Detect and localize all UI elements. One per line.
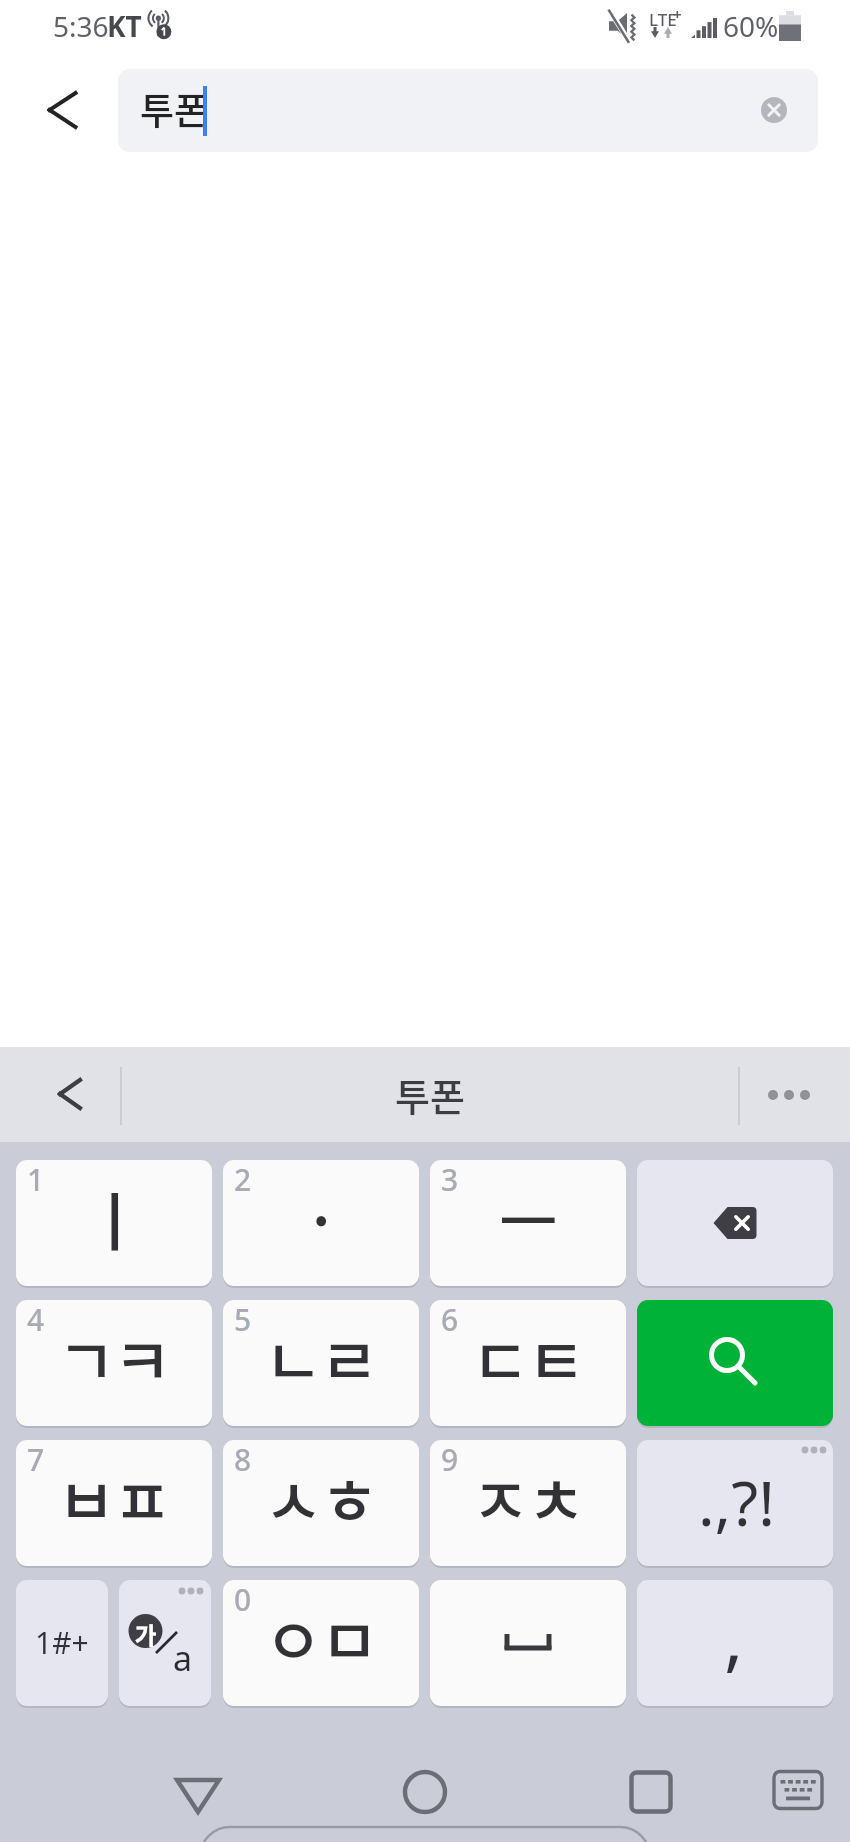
staticText: , bbox=[724, 1587, 744, 1685]
button[interactable]: Recent apps bbox=[613, 1754, 689, 1830]
staticText: LTE bbox=[649, 8, 677, 31]
staticText: 3 bbox=[441, 1160, 459, 1200]
staticText: · bbox=[303, 1171, 337, 1264]
button[interactable]: Search bbox=[637, 1300, 833, 1426]
staticText: .,?! bbox=[698, 1460, 775, 1544]
staticText: ㅅㅎ bbox=[264, 1451, 376, 1544]
button[interactable]: Switch language bbox=[119, 1580, 211, 1706]
staticText: ㄱㅋ bbox=[57, 1311, 169, 1404]
button[interactable]: Home bbox=[387, 1754, 463, 1830]
staticText: 6 bbox=[441, 1300, 459, 1340]
staticText: 1 bbox=[27, 1160, 45, 1200]
button[interactable]: Previous bbox=[36, 1066, 100, 1122]
button[interactable]: 6 bbox=[430, 1300, 626, 1426]
staticText: 투폰 bbox=[395, 1067, 465, 1122]
staticText: 8 bbox=[234, 1440, 252, 1480]
button[interactable]: 1#+ bbox=[16, 1580, 108, 1706]
button[interactable]: More options bbox=[755, 1067, 817, 1123]
button[interactable]: 3 bbox=[430, 1160, 626, 1286]
staticText: ㅣ bbox=[85, 1171, 141, 1264]
button[interactable]: Back bbox=[160, 1754, 236, 1830]
staticText: ㄷㅌ bbox=[471, 1311, 583, 1404]
staticText: KT bbox=[107, 7, 142, 45]
staticText: 0 bbox=[234, 1580, 252, 1620]
staticText: 9 bbox=[441, 1440, 459, 1480]
button[interactable]: Back bbox=[24, 76, 92, 144]
staticText: 4 bbox=[27, 1300, 45, 1340]
button[interactable]: .,?! bbox=[637, 1440, 833, 1566]
button[interactable]: Hide keyboard bbox=[762, 1758, 834, 1822]
staticText: 1#+ bbox=[35, 1622, 89, 1663]
button[interactable]: 0 bbox=[223, 1580, 419, 1706]
staticText: 가 bbox=[135, 1617, 157, 1650]
button[interactable]: , bbox=[637, 1580, 833, 1706]
button[interactable]: 2 bbox=[223, 1160, 419, 1286]
button[interactable]: 1 bbox=[16, 1160, 212, 1286]
button[interactable]: Clear text bbox=[752, 88, 796, 132]
staticText: 2 bbox=[234, 1160, 252, 1200]
button[interactable]: 5 bbox=[223, 1300, 419, 1426]
staticText: ㄴㄹ bbox=[264, 1311, 376, 1404]
staticText: ㅇㅁ bbox=[264, 1591, 376, 1684]
staticText: 7 bbox=[27, 1440, 45, 1480]
staticText: a bbox=[173, 1635, 193, 1681]
button[interactable]: 투폰 bbox=[118, 69, 818, 152]
button[interactable]: 7 bbox=[16, 1440, 212, 1566]
staticText: 5 bbox=[234, 1300, 252, 1340]
staticText: ㅂㅍ bbox=[57, 1451, 169, 1544]
button[interactable]: 4 bbox=[16, 1300, 212, 1426]
staticText: ㅡ bbox=[499, 1171, 555, 1264]
staticText: 투폰 bbox=[140, 82, 209, 136]
staticText: 60% bbox=[723, 7, 779, 45]
staticText: 5:36 bbox=[53, 7, 109, 45]
button[interactable]: 8 bbox=[223, 1440, 419, 1566]
button[interactable]: 9 bbox=[430, 1440, 626, 1566]
staticText: ㅈㅊ bbox=[471, 1451, 583, 1544]
button[interactable]: Backspace bbox=[637, 1160, 833, 1286]
button[interactable]: Space bbox=[430, 1580, 626, 1706]
staticText: + bbox=[673, 4, 682, 24]
